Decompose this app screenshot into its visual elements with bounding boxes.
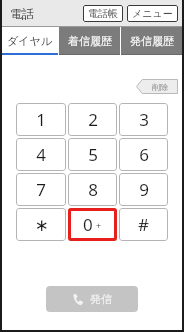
button[interactable]: 5 xyxy=(68,138,117,171)
staticText: 発信履歴 xyxy=(130,34,174,48)
staticText: ダイヤル xyxy=(7,34,53,48)
staticText: 発信 xyxy=(90,292,112,306)
staticText: 3 xyxy=(139,108,149,131)
staticText: 1 xyxy=(36,108,46,131)
staticText: ∗ xyxy=(34,215,49,235)
button[interactable]: 電話帳 xyxy=(83,5,123,22)
button[interactable]: 2 xyxy=(68,103,117,136)
staticText: 電話帳 xyxy=(88,7,118,20)
button[interactable]: 発信履歴 xyxy=(121,27,182,55)
staticText: 6 xyxy=(139,143,149,166)
staticText: 8 xyxy=(88,178,98,201)
staticText: 0 xyxy=(83,213,93,236)
button[interactable]: 1 xyxy=(16,103,66,136)
button[interactable]: 着信履歴 xyxy=(59,27,120,55)
staticText: 9 xyxy=(139,178,149,201)
staticText: 2 xyxy=(88,108,98,131)
button[interactable]: 9 xyxy=(119,173,168,206)
button[interactable]: ダイヤル xyxy=(2,27,58,55)
staticText: # xyxy=(138,213,149,236)
button[interactable]: 3 xyxy=(119,103,168,136)
staticText: メニュー xyxy=(132,7,173,20)
staticText: + xyxy=(96,219,102,231)
staticText: 電話 xyxy=(10,6,34,21)
button[interactable]: ∗ xyxy=(16,208,66,241)
staticText: 5 xyxy=(88,143,98,166)
button[interactable]: 4 xyxy=(16,138,66,171)
button[interactable]: # xyxy=(119,208,168,241)
staticText: 4 xyxy=(36,143,46,166)
button[interactable]: 削除 xyxy=(136,79,178,94)
staticText: 7 xyxy=(36,178,46,201)
button[interactable]: メニュー xyxy=(127,5,178,22)
button[interactable]: 6 xyxy=(119,138,168,171)
button[interactable]: 7 xyxy=(16,173,66,206)
button[interactable]: 8 xyxy=(68,173,117,206)
staticText: 削除 xyxy=(152,82,168,92)
button[interactable]: 0 xyxy=(68,208,117,241)
button[interactable]: 発信 xyxy=(46,286,138,312)
staticText: 着信履歴 xyxy=(68,34,112,48)
